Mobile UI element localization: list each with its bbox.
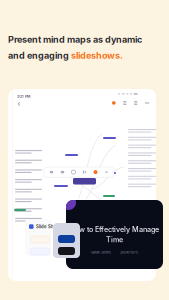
staticText: and engaging: [8, 50, 71, 61]
staticText: Time: [106, 235, 123, 244]
staticText: slideshows.: [71, 50, 123, 61]
button[interactable]: Slideshow settings: [30, 248, 49, 255]
button[interactable]: Record: [58, 247, 75, 255]
button[interactable]: Start slideshow: [30, 236, 49, 243]
staticText: How to Effectively Manage: [70, 225, 159, 234]
staticText: 3:21 PM: [17, 94, 31, 99]
staticText: ‹: [17, 99, 20, 108]
button[interactable]: Present: [58, 235, 75, 243]
staticText: Sarah Jones: [91, 250, 111, 254]
staticText: Slide Show: [36, 224, 61, 229]
staticText: 2024/10/15: [120, 250, 138, 254]
staticText: Present mind maps as dynamic: [8, 34, 142, 45]
